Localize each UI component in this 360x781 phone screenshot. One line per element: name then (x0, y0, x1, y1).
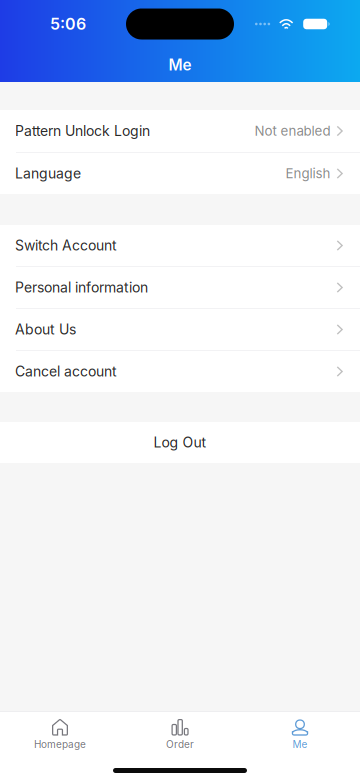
staticText: 5:06 (50, 14, 86, 34)
staticText: Pattern Unlock Login (15, 122, 150, 139)
staticText: Me (168, 56, 191, 74)
staticText: Me (292, 738, 307, 750)
button[interactable]: Log Out (0, 422, 360, 463)
staticText: Language (15, 165, 81, 182)
staticText: English (285, 165, 330, 181)
staticText: Homepage (34, 738, 86, 750)
staticText: Cancel account (15, 363, 117, 380)
staticText: Order (166, 738, 194, 750)
button[interactable]: Me (240, 712, 360, 756)
button[interactable]: About Us (0, 309, 360, 350)
button[interactable]: Personal information (0, 267, 360, 308)
button[interactable]: Switch Account (0, 225, 360, 266)
staticText: Switch Account (15, 237, 117, 254)
staticText: Log Out (153, 434, 206, 451)
staticText: About Us (15, 321, 76, 338)
staticText: Not enabled (254, 123, 330, 139)
button[interactable]: Pattern Unlock Login (0, 110, 360, 152)
button[interactable]: Homepage (0, 712, 120, 756)
staticText: Personal information (15, 279, 148, 296)
button[interactable]: Language (0, 153, 360, 194)
button[interactable]: Cancel account (0, 351, 360, 392)
button[interactable]: Order (120, 712, 240, 756)
